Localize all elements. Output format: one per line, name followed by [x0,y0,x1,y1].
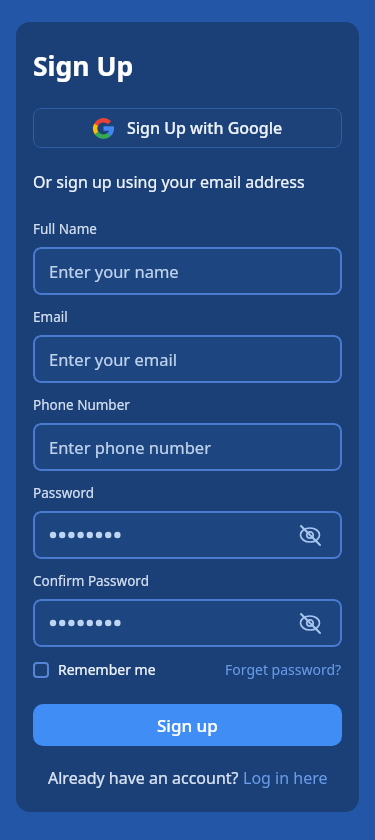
staticText: Confirm Password [33,572,149,590]
button[interactable] [33,599,342,647]
staticText: Sign Up [33,48,134,84]
staticText: Full Name [33,220,97,238]
staticText: Log in here [243,767,328,789]
button[interactable]: Forget password? [225,660,342,679]
staticText: Sign Up with Google [127,117,283,139]
button[interactable]: Enter phone number [33,423,342,471]
button[interactable] [298,523,322,547]
button[interactable]: Sign up [33,704,342,746]
button[interactable] [33,511,342,559]
button[interactable]: Enter your email [33,335,342,383]
button[interactable]: Sign Up with Google [33,108,342,148]
staticText: Enter phone number [49,436,211,458]
staticText: Email [33,308,68,326]
staticText: Or sign up using your email address [33,171,305,193]
staticText: Password [33,484,95,502]
staticText: Remember me [58,660,156,679]
staticText: Forget password? [225,660,342,679]
staticText: Enter your email [49,348,177,370]
button[interactable]: Remember me [33,660,156,679]
staticText: Phone Number [33,396,130,414]
staticText: Already have an account? [48,767,243,789]
button[interactable] [298,611,322,635]
staticText: Sign up [157,714,218,737]
button[interactable]: Enter your name [33,247,342,295]
button[interactable]: Log in here [243,767,328,789]
staticText: Enter your name [49,260,179,282]
